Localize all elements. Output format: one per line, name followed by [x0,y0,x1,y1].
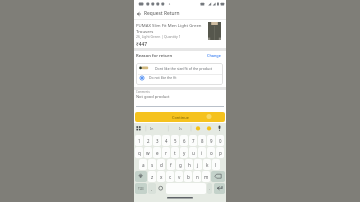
button[interactable]: Change [207,53,221,58]
staticText: ?123 [138,187,144,191]
button[interactable] [214,183,225,194]
staticText: Trousers [136,28,154,34]
staticText: a [142,162,145,168]
staticText: q [138,150,141,156]
staticText: y [183,150,186,156]
staticText: 7 [192,138,195,144]
staticText: 1 [138,138,141,144]
staticText: Dont like the size/fit of the product [155,66,213,71]
staticText: 9 [210,138,213,144]
staticText: s [151,162,154,168]
button[interactable]: r [162,147,170,158]
button[interactable]: q [135,147,143,158]
staticText: b [187,174,190,180]
staticText: 26, Light Green | Quantity 1 [136,34,181,39]
button[interactable]: 8 [198,135,206,146]
button[interactable]: 2 [144,135,152,146]
button[interactable]: o [207,147,215,158]
button[interactable]: 6 [180,135,188,146]
button[interactable]: w [144,147,152,158]
button[interactable]: c [166,171,174,182]
staticText: t [174,150,176,156]
button[interactable]: y [180,147,188,158]
staticText: 4 [165,138,168,144]
button[interactable]: k [203,159,211,170]
staticText: g [179,162,182,168]
staticText: n [196,174,199,180]
button[interactable]: h [185,159,193,170]
button[interactable]: a [139,159,147,170]
button[interactable]: e [153,147,161,158]
button[interactable]: s [148,159,156,170]
staticText: Continue [172,115,189,120]
staticText: In [150,126,154,131]
button[interactable]: d [157,159,165,170]
button[interactable]: . [207,183,212,194]
staticText: , [151,186,153,191]
staticText: Do not like the fit [149,75,177,80]
button[interactable]: 9 [207,135,215,146]
button[interactable]: , [148,183,156,194]
button[interactable] [157,183,165,194]
button[interactable] [134,8,144,19]
button[interactable]: n [193,171,201,182]
button[interactable]: ?123 [135,183,147,194]
button[interactable]: b [184,171,192,182]
button[interactable] [135,171,147,182]
staticText: p [219,150,222,156]
staticText: e [156,150,159,156]
staticText: PUMAX Slim Fit Men Light Green [136,22,202,28]
button[interactable]: l [212,159,220,170]
staticText: m [204,174,209,180]
staticText: o [210,150,213,156]
button[interactable]: 5 [171,135,179,146]
button[interactable]: 4 [162,135,170,146]
staticText: 8 [201,138,204,144]
staticText: 6 [183,138,186,144]
staticText: Is [179,126,182,131]
staticText: i [201,150,203,156]
staticText: w [146,150,150,156]
staticText: u [192,150,195,156]
button[interactable]: x [157,171,165,182]
button[interactable]: p [216,147,224,158]
staticText: l [215,162,217,168]
button[interactable]: i [198,147,206,158]
staticText: Comments [136,90,150,94]
button[interactable]: m [202,171,210,182]
staticText: j [197,162,199,168]
button[interactable]: g [176,159,184,170]
button[interactable]: 0 [216,135,224,146]
staticText: 3 [156,138,159,144]
button[interactable]: 7 [189,135,197,146]
staticText: h [188,162,191,168]
staticText: v [178,174,181,180]
button[interactable] [136,74,223,85]
staticText: . [209,186,211,191]
button[interactable]: Continue [135,112,225,122]
staticText: Request Return [144,10,180,17]
button[interactable]: f [167,159,175,170]
staticText: z [151,174,154,180]
staticText: r [165,150,167,156]
staticText: 5 [174,138,177,144]
button[interactable] [211,171,225,182]
button[interactable]: 1 [135,135,143,146]
button[interactable]: 3 [153,135,161,146]
staticText: x [160,174,163,180]
staticText: Not good product [136,94,170,99]
button[interactable]: u [189,147,197,158]
staticText: d [160,162,163,168]
staticText: 0 [219,138,222,144]
staticText: 2 [147,138,150,144]
button[interactable] [136,63,223,74]
staticText: k [206,162,209,168]
staticText: f [170,162,172,168]
button[interactable]: z [148,171,156,182]
button[interactable]: t [171,147,179,158]
staticText: c [169,174,172,180]
button[interactable]: j [194,159,202,170]
staticText: ₹447 [136,41,147,48]
button[interactable]: v [175,171,183,182]
